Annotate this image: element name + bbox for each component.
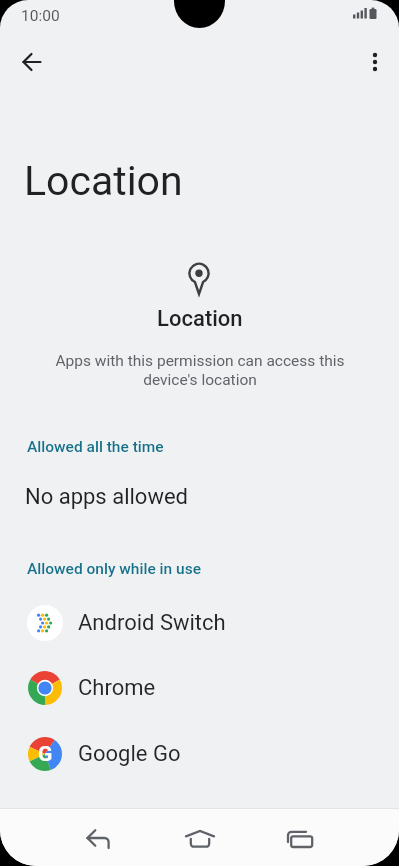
staticText: Google Go xyxy=(78,741,181,767)
staticText: Allowed only while in use xyxy=(27,560,201,578)
staticText: No apps allowed xyxy=(25,484,189,510)
button[interactable] xyxy=(260,809,340,866)
button[interactable] xyxy=(160,809,240,866)
staticText: Chrome xyxy=(78,675,156,701)
staticText: Allowed all the time xyxy=(27,438,164,456)
button[interactable] xyxy=(351,38,399,86)
staticText: 10:00 xyxy=(21,7,60,25)
staticText: Apps with this permission can access thi… xyxy=(55,352,345,389)
button[interactable] xyxy=(8,38,56,86)
button[interactable] xyxy=(60,809,140,866)
button[interactable]: Chrome xyxy=(0,655,399,721)
staticText: Location xyxy=(157,306,243,332)
button[interactable]: G xyxy=(0,721,399,787)
staticText: G xyxy=(38,742,53,767)
staticText: Android Switch xyxy=(78,610,226,636)
staticText: Location xyxy=(24,157,183,205)
button[interactable]: Android Switch xyxy=(0,590,399,656)
